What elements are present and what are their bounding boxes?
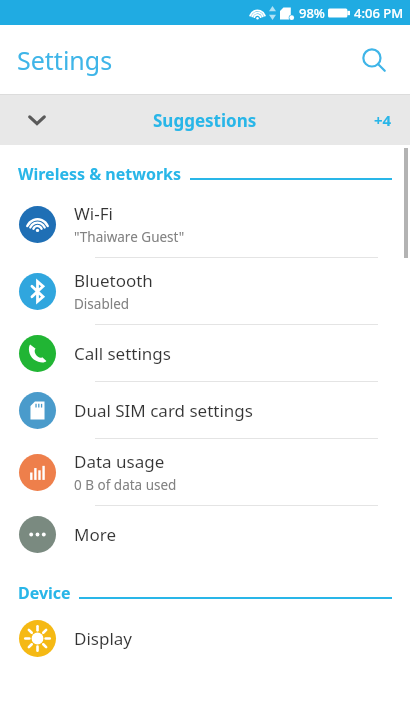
staticText: Device — [18, 582, 71, 604]
staticText: +4 — [374, 110, 392, 130]
staticText: Settings — [17, 43, 113, 77]
staticText: Data usage — [74, 450, 165, 473]
button[interactable]: Display — [0, 610, 410, 666]
staticText: Disabled — [74, 295, 130, 313]
staticText: Dual SIM card settings — [74, 399, 253, 422]
staticText: 4:06 PM — [354, 4, 404, 22]
button[interactable]: Bluetooth — [0, 258, 410, 324]
staticText: Wi-Fi — [74, 202, 113, 225]
staticText: Suggestions — [153, 109, 257, 132]
button[interactable]: Dual SIM card settings — [0, 382, 410, 438]
staticText: More — [74, 523, 116, 546]
staticText: Call settings — [74, 342, 171, 365]
button[interactable]: Search — [350, 36, 398, 84]
button[interactable]: Wi-Fi — [0, 191, 410, 257]
staticText: 98% — [299, 4, 325, 22]
staticText: "Thaiware Guest" — [74, 228, 185, 246]
button[interactable]: Suggestions — [0, 95, 410, 145]
button[interactable]: Data usage — [0, 439, 410, 505]
button[interactable]: Call settings — [0, 325, 410, 381]
staticText: Wireless & networks — [18, 163, 182, 185]
staticText: Display — [74, 627, 132, 650]
staticText: 0 B of data used — [74, 476, 177, 494]
staticText: Bluetooth — [74, 269, 153, 292]
button[interactable]: More — [0, 506, 410, 562]
